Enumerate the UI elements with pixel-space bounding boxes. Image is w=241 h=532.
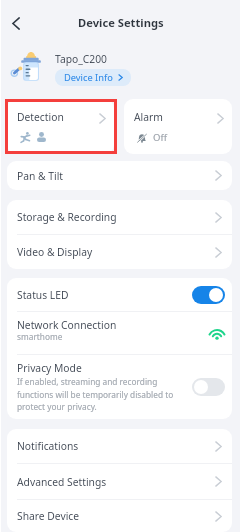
staticText: Advanced Settings [17, 475, 107, 489]
button[interactable]: Status LED [7, 278, 232, 311]
button[interactable]: Device Info [55, 69, 131, 86]
staticText: Storage & Recording [17, 210, 117, 224]
button[interactable]: Notifications [7, 429, 232, 463]
staticText: If enabled, streaming and recording func… [17, 376, 184, 412]
button[interactable]: Privacy Mode [7, 355, 232, 419]
staticText: Device Info [64, 71, 113, 84]
staticText: Tapo_C200 [55, 52, 107, 66]
staticText: Detection [17, 110, 64, 124]
staticText: Off [153, 131, 167, 144]
staticText: Privacy Mode [17, 361, 82, 375]
staticText: Pan & Tilt [17, 169, 64, 183]
staticText: Network Connection [17, 318, 117, 332]
staticText: Notifications [17, 439, 79, 453]
button[interactable]: Detection [7, 99, 114, 154]
button[interactable]: Status LED on [192, 286, 225, 304]
button[interactable]: Alarm [124, 99, 232, 154]
button[interactable]: Back [4, 11, 28, 35]
button[interactable]: Privacy mode off [192, 378, 225, 396]
staticText: Video & Display [17, 245, 93, 259]
button[interactable]: Video & Display [7, 235, 232, 269]
button[interactable]: Storage & Recording [7, 200, 232, 234]
button[interactable]: Advanced Settings [7, 464, 232, 499]
staticText: Status LED [17, 288, 69, 302]
button[interactable]: Network Connection [7, 312, 232, 354]
button[interactable]: Pan & Tilt [7, 161, 232, 190]
staticText: Alarm [134, 110, 163, 124]
button[interactable]: Share Device [7, 500, 232, 532]
staticText: smarthome [17, 331, 63, 342]
staticText: Share Device [17, 509, 80, 523]
staticText: Device Settings [78, 15, 164, 30]
